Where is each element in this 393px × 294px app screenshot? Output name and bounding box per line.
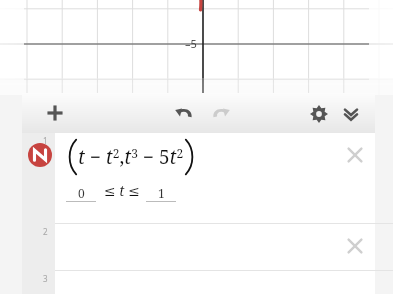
staticText: –5 (185, 36, 197, 51)
button[interactable]: Redo (209, 102, 233, 126)
button[interactable]: Collapse (339, 102, 363, 126)
staticText: 1 (158, 185, 165, 201)
button[interactable]: Delete expression 1 (342, 142, 368, 168)
staticText: 3 (43, 273, 48, 284)
staticText: 1 (43, 135, 48, 146)
button[interactable]: Undo (172, 102, 196, 126)
staticText: 2 (43, 226, 48, 237)
button[interactable]: Settings (307, 102, 331, 126)
button[interactable]: 1 (22, 133, 375, 223)
button[interactable]: Add expression (43, 101, 67, 125)
button[interactable]: 3 (22, 271, 375, 294)
staticText: t − t2,t3 − 5t2 (78, 144, 184, 170)
button[interactable]: Delete expression 2 (342, 233, 368, 259)
staticText: ≤ t ≤ (104, 181, 140, 200)
staticText: 0 (78, 185, 85, 201)
button[interactable]: 2 (22, 224, 375, 271)
button[interactable]: Curve colour (28, 143, 52, 167)
